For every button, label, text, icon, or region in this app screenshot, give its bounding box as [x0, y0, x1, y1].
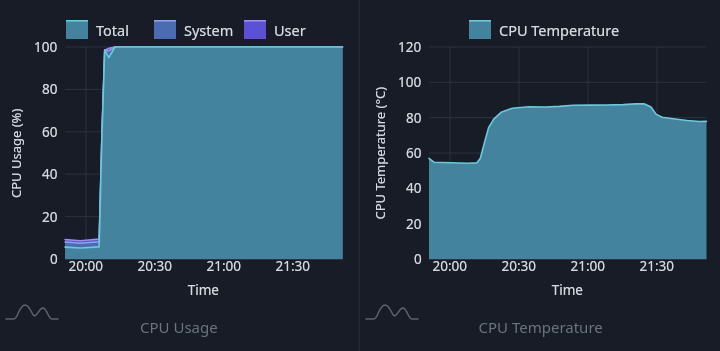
button[interactable]: CPU Usage sparkline — [2, 296, 54, 320]
button[interactable]: CPU Temperature sparkline — [362, 296, 414, 320]
button[interactable] — [0, 0, 358, 320]
button[interactable] — [361, 320, 720, 351]
button[interactable] — [361, 0, 720, 320]
button[interactable] — [0, 320, 358, 351]
